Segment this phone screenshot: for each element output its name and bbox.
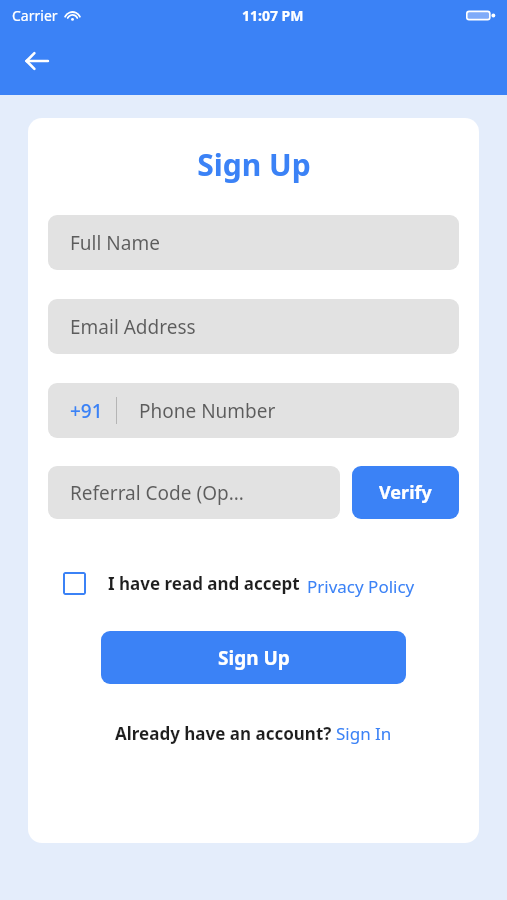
staticText: 11:07 PM xyxy=(242,6,304,25)
staticText: Already have an account? xyxy=(115,722,336,745)
staticText: Referral Code (Op... xyxy=(70,480,244,506)
button[interactable]: Privacy Policy xyxy=(307,575,415,598)
button[interactable]: Already have an account? xyxy=(28,722,479,745)
staticText: Full Name xyxy=(70,230,160,256)
staticText: Sign Up xyxy=(197,144,311,185)
staticText: Phone Number xyxy=(139,398,276,424)
button[interactable]: Sign Up xyxy=(101,631,406,684)
staticText: I have read and accept xyxy=(108,572,300,595)
button[interactable]: Accept privacy policy xyxy=(63,572,86,595)
staticText: Privacy Policy xyxy=(307,575,415,598)
staticText: Email Address xyxy=(70,314,196,340)
button[interactable]: +91 xyxy=(48,383,459,438)
button[interactable]: Referral Code (Op... xyxy=(48,466,340,519)
staticText: Sign Up xyxy=(218,645,290,671)
staticText: Sign In xyxy=(336,722,392,745)
staticText: +91 xyxy=(70,398,103,424)
staticText: Carrier xyxy=(12,6,58,25)
button[interactable]: Back xyxy=(16,40,58,82)
button[interactable]: Email Address xyxy=(48,299,459,354)
button[interactable]: Full Name xyxy=(48,215,459,270)
button[interactable]: Verify xyxy=(352,466,459,519)
staticText: Verify xyxy=(379,480,432,505)
